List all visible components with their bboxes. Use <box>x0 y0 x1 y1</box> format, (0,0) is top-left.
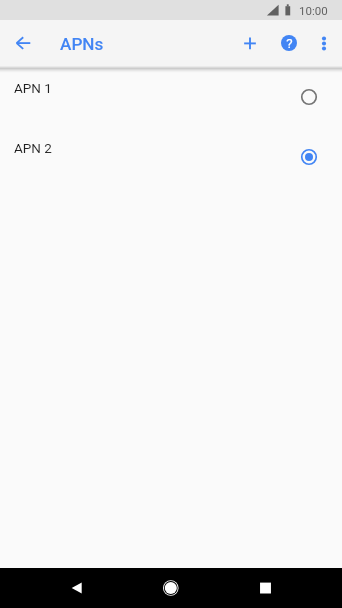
button[interactable]: APN 2 <box>0 128 342 188</box>
button[interactable]: Back <box>0 20 46 66</box>
button[interactable]: Help <box>271 20 306 66</box>
staticText: APN 1 <box>14 80 52 96</box>
button[interactable]: More options <box>306 20 341 66</box>
staticText: APNs <box>60 34 104 54</box>
staticText: APN 2 <box>14 140 52 156</box>
button[interactable]: Add <box>228 20 271 66</box>
staticText: 10:00 <box>299 4 328 17</box>
staticText: ? <box>286 35 293 51</box>
button[interactable]: APN 1 <box>0 68 342 128</box>
